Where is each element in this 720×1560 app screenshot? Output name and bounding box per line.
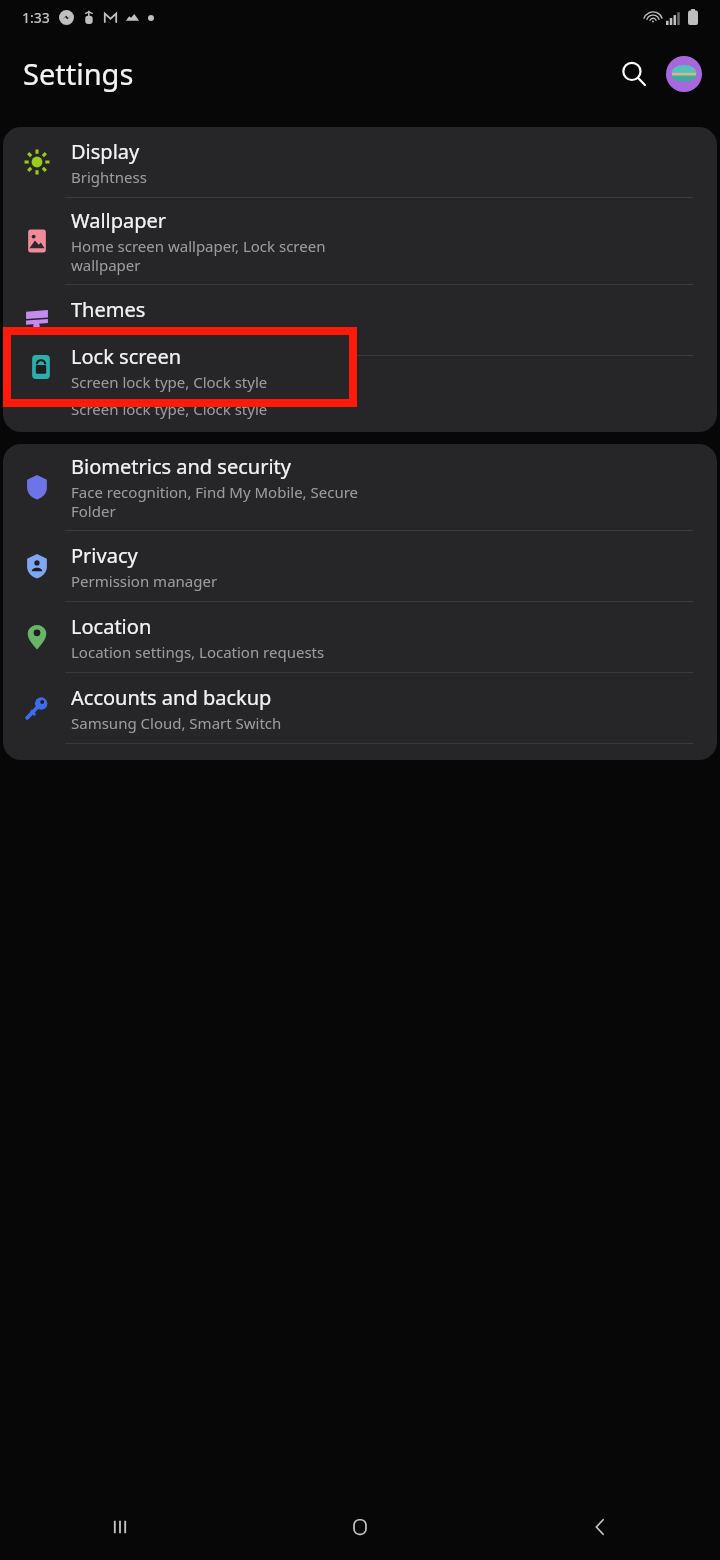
staticText: Location [71,613,152,640]
button[interactable]: Themes [3,285,717,355]
button[interactable]: Biometrics and security [3,444,717,530]
button[interactable]: Back [480,1494,720,1560]
staticText: Screen lock type, Clock style [71,372,268,392]
button[interactable]: Location [3,602,717,672]
button[interactable]: Accounts and backup [3,673,717,743]
button[interactable]: Account [666,56,702,92]
staticText: Privacy [71,542,138,569]
button[interactable]: Home [240,1494,480,1560]
staticText: Brightness [71,167,147,187]
staticText: Display [71,138,140,165]
button[interactable]: Wallpaper [3,198,717,284]
button[interactable]: Lock screen [3,356,717,432]
staticText: Settings [23,54,134,93]
staticText: Face recognition, Find My Mobile, Secure… [71,482,359,521]
staticText: Screen lock type, Clock style [71,399,268,419]
staticText: Location settings, Location requests [71,642,325,662]
button[interactable]: Lock screen [11,335,349,399]
staticText: 1:33 [22,8,50,27]
staticText: Samsung Cloud, Smart Switch [71,713,282,733]
button[interactable]: Display [3,127,717,197]
staticText: Biometrics and security [71,453,291,480]
staticText: Lock screen [71,370,182,397]
staticText: Lock screen [71,343,182,370]
staticText: Themes, Wallpapers, Icons [71,325,259,345]
staticText: Themes [71,296,146,323]
staticText: Home screen wallpaper, Lock screen wallp… [71,236,326,275]
button[interactable]: Recents [0,1494,240,1560]
button[interactable]: Search [610,50,658,98]
button[interactable]: Privacy [3,531,717,601]
staticText: Wallpaper [71,207,167,234]
staticText: Permission manager [71,571,218,591]
staticText: Accounts and backup [71,684,272,711]
